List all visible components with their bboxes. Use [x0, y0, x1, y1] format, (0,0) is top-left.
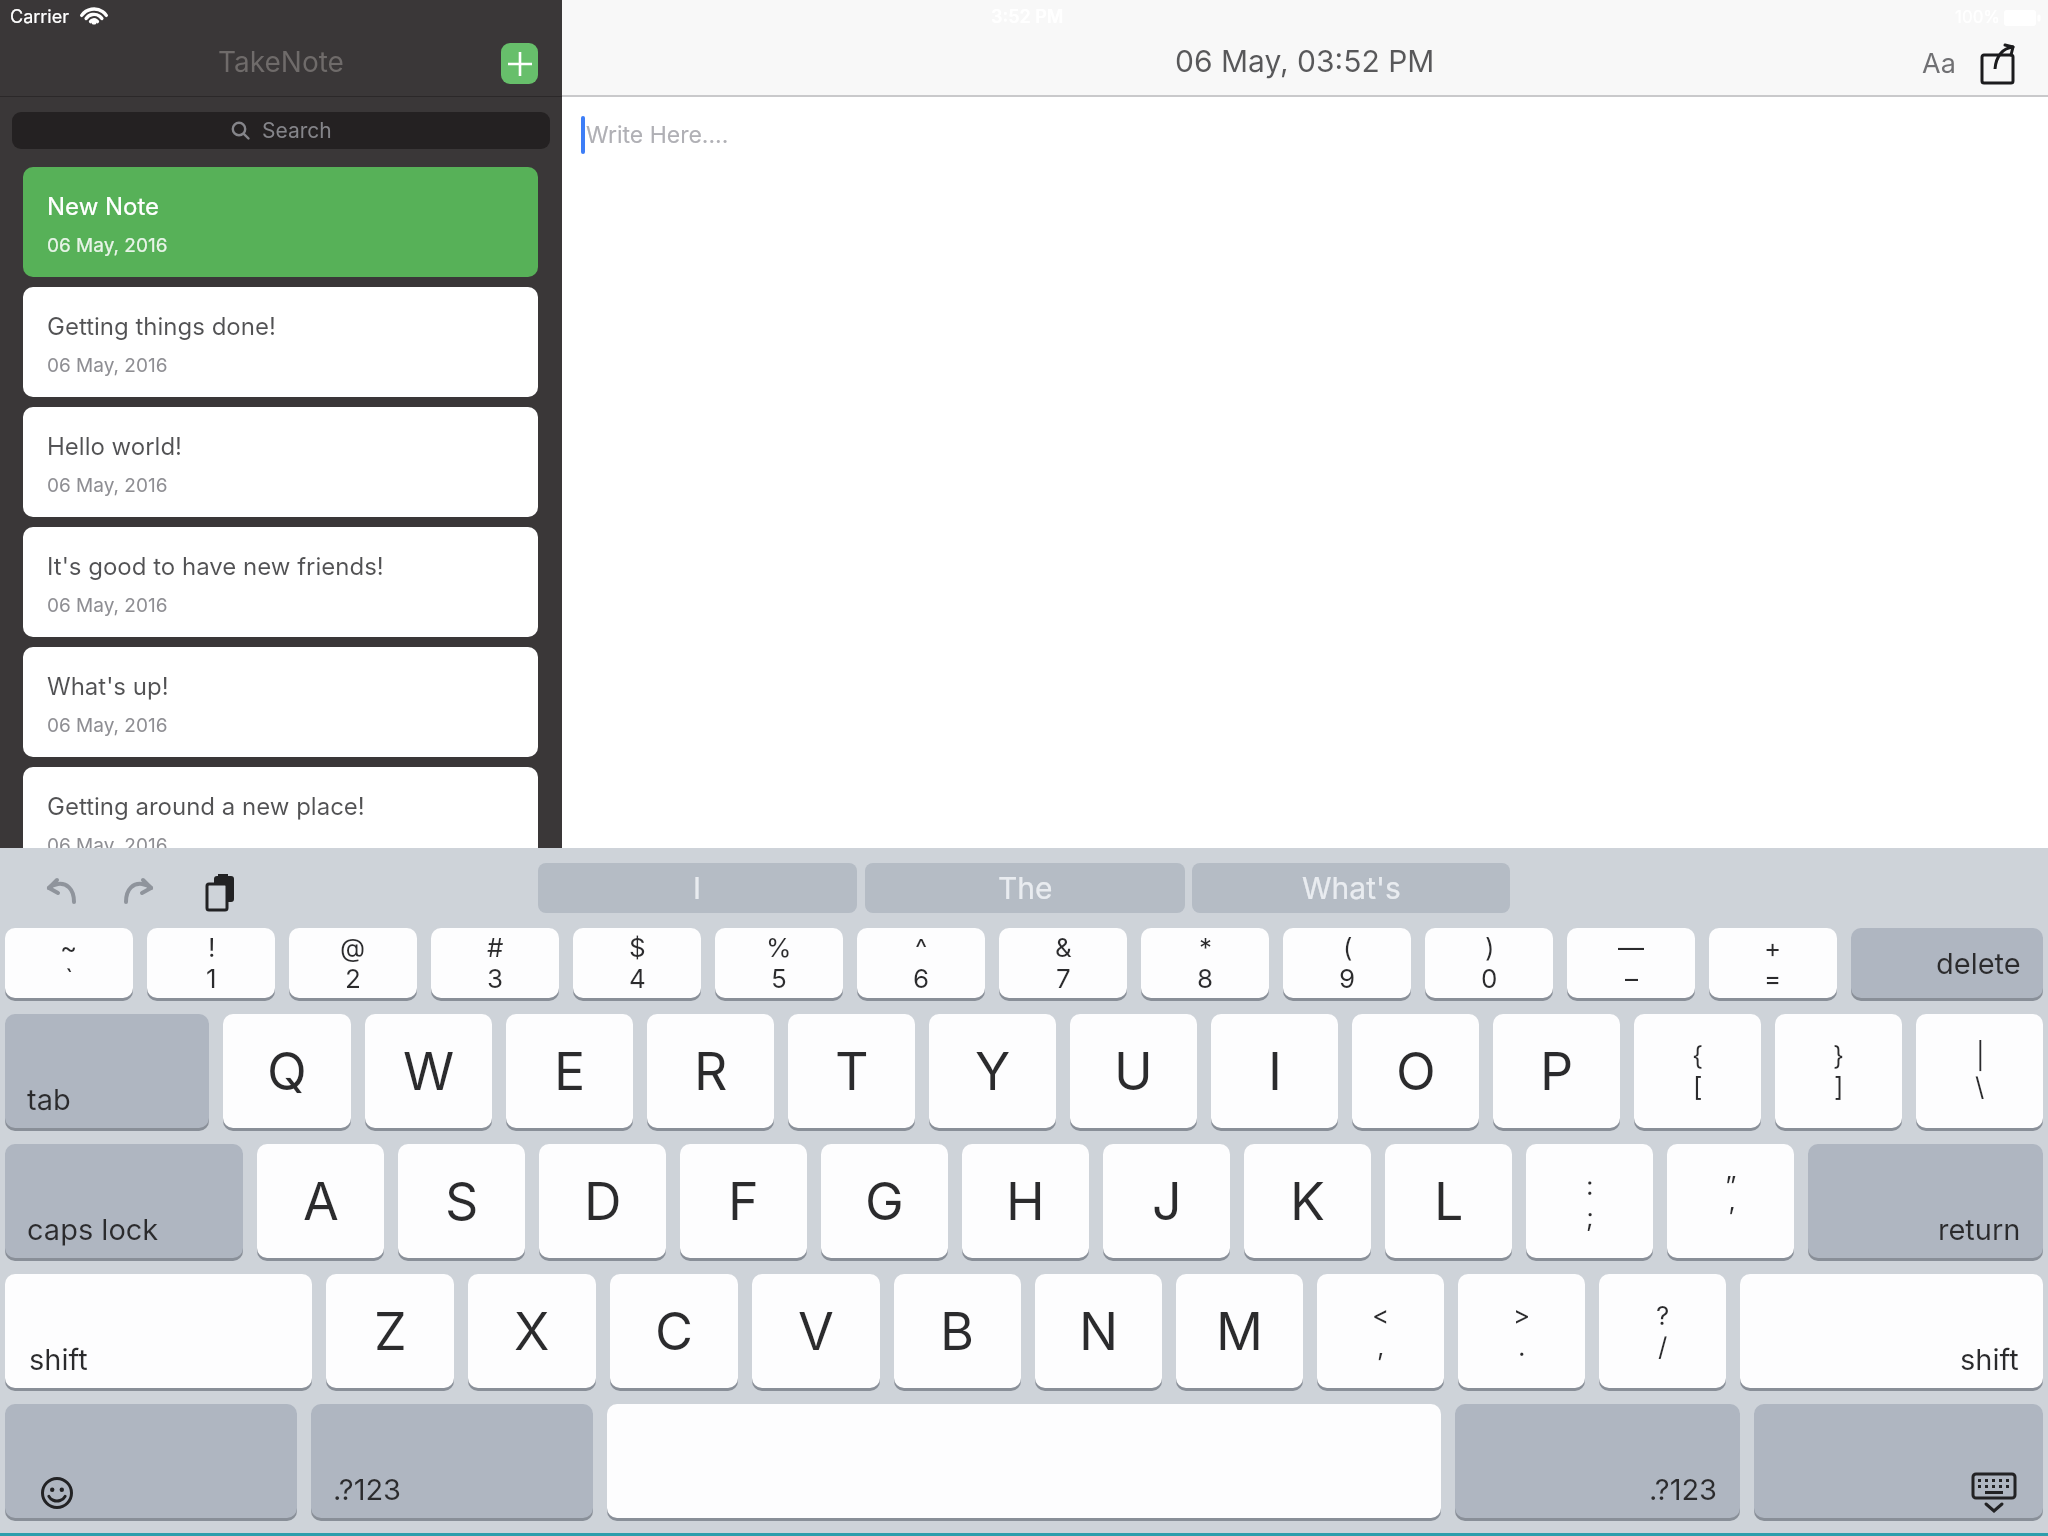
button[interactable]: # [431, 928, 559, 998]
button[interactable]: Getting around a new place! [23, 767, 538, 877]
button[interactable]: ! [147, 928, 275, 998]
button[interactable]: M [1176, 1274, 1303, 1388]
button[interactable]: ( [1283, 928, 1411, 998]
button[interactable]: S [398, 1144, 525, 1258]
button[interactable]: .?123 [311, 1404, 593, 1518]
button[interactable]: Z [326, 1274, 454, 1388]
staticText: ) [1485, 932, 1495, 963]
button[interactable] [5, 1404, 297, 1518]
button[interactable]: Aa [1922, 47, 1956, 80]
staticText: 06 May, 2016 [47, 714, 168, 737]
button[interactable]: @ [289, 928, 417, 998]
button[interactable]: J [1103, 1144, 1230, 1258]
button[interactable]: < [1317, 1274, 1444, 1388]
staticText: + [1764, 932, 1782, 963]
button[interactable]: I [1211, 1014, 1338, 1128]
staticText: C [655, 1300, 693, 1363]
button[interactable]: | [1916, 1014, 2043, 1128]
button[interactable]: H [962, 1144, 1089, 1258]
button[interactable]: B [894, 1274, 1021, 1388]
button[interactable] [44, 878, 78, 906]
button[interactable]: + [1709, 928, 1837, 998]
staticText: E [554, 1040, 586, 1103]
button[interactable]: K [1244, 1144, 1371, 1258]
button[interactable]: ~ [5, 928, 133, 998]
staticText: | [1976, 1040, 1985, 1071]
staticText: 06 May, 2016 [47, 354, 168, 377]
button[interactable]: C [610, 1274, 738, 1388]
staticText: / [1658, 1331, 1668, 1362]
button[interactable] [1754, 1404, 2043, 1518]
button[interactable]: * [1141, 928, 1269, 998]
button[interactable]: shift [5, 1274, 312, 1388]
button[interactable]: X [468, 1274, 596, 1388]
button[interactable]: — [1567, 928, 1695, 998]
button[interactable]: V [752, 1274, 880, 1388]
button[interactable]: ^ [857, 928, 985, 998]
staticText: D [584, 1170, 622, 1233]
staticText: Write Here.... [586, 121, 729, 149]
button[interactable]: W [365, 1014, 492, 1128]
button[interactable]: New Note [23, 167, 538, 277]
button[interactable]: O [1352, 1014, 1479, 1128]
button[interactable]: Hello world! [23, 407, 538, 517]
staticText: Aa [1922, 47, 1956, 80]
button[interactable]: R [647, 1014, 774, 1128]
button[interactable]: T [788, 1014, 915, 1128]
staticText: ’ [1728, 1201, 1735, 1232]
staticText: .?123 [333, 1472, 402, 1507]
button[interactable]: Getting things done! [23, 287, 538, 397]
button[interactable]: tab [5, 1014, 209, 1128]
button[interactable]: A [257, 1144, 384, 1258]
button[interactable]: Q [223, 1014, 351, 1128]
staticText: Getting things done! [47, 312, 276, 341]
button[interactable]: % [715, 928, 843, 998]
button[interactable]: Y [929, 1014, 1056, 1128]
button[interactable]: return [1808, 1144, 2043, 1258]
button[interactable]: It's good to have new friends! [23, 527, 538, 637]
button[interactable]: shift [1740, 1274, 2043, 1388]
staticText: H [1006, 1170, 1045, 1233]
button[interactable] [205, 876, 239, 910]
button[interactable]: What's up! [23, 647, 538, 757]
staticText: ^ [915, 932, 928, 963]
button[interactable]: caps lock [5, 1144, 243, 1258]
button[interactable]: D [539, 1144, 666, 1258]
button[interactable]: .?123 [1455, 1404, 1740, 1518]
button[interactable]: L [1385, 1144, 1512, 1258]
button[interactable]: : [1526, 1144, 1653, 1258]
staticText: Search [262, 118, 332, 143]
staticText: 2 [345, 963, 361, 994]
button[interactable]: What's [1192, 863, 1510, 913]
button[interactable]: I [538, 863, 857, 913]
button[interactable]: ? [1599, 1274, 1726, 1388]
button[interactable]: N [1035, 1274, 1162, 1388]
button[interactable]: > [1458, 1274, 1585, 1388]
staticText: U [1114, 1040, 1153, 1103]
staticText: [ [1693, 1071, 1703, 1102]
button[interactable]: delete [1851, 928, 2043, 998]
button[interactable]: Search [12, 112, 550, 149]
button[interactable]: U [1070, 1014, 1197, 1128]
button[interactable]: ) [1425, 928, 1553, 998]
button[interactable]: $ [573, 928, 701, 998]
button[interactable] [1982, 43, 2018, 83]
button[interactable]: & [999, 928, 1127, 998]
button[interactable]: The [865, 863, 1185, 913]
button[interactable]: G [821, 1144, 948, 1258]
button[interactable]: { [1634, 1014, 1761, 1128]
button[interactable] [122, 878, 156, 906]
button[interactable] [501, 43, 538, 84]
button[interactable]: F [680, 1144, 807, 1258]
staticText: – [1625, 963, 1638, 994]
button[interactable]: ” [1667, 1144, 1794, 1258]
staticText: 3 [487, 963, 504, 994]
button[interactable]: } [1775, 1014, 1902, 1128]
staticText: .?123 [1649, 1472, 1718, 1507]
staticText: Z [374, 1300, 407, 1363]
button[interactable]: E [506, 1014, 633, 1128]
staticText: 0 [1481, 963, 1498, 994]
button[interactable]: P [1493, 1014, 1620, 1128]
staticText: 06 May, 2016 [47, 234, 168, 257]
